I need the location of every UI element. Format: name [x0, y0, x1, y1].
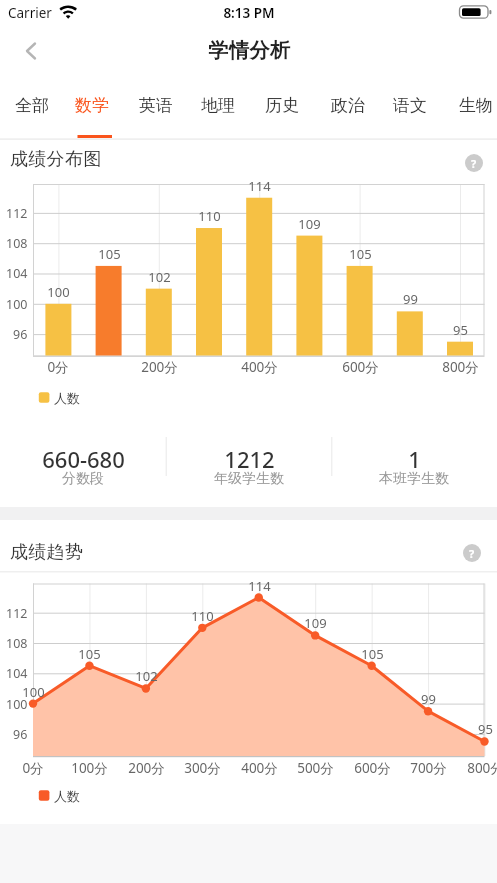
staticText: ? — [469, 546, 475, 561]
button[interactable]: 历史 — [256, 88, 308, 122]
staticText: 96 — [13, 726, 28, 743]
staticText: 年级学生数 — [214, 470, 284, 488]
staticText: 108 — [6, 635, 28, 652]
staticText: 108 — [6, 235, 28, 252]
button[interactable]: 英语 — [130, 88, 182, 122]
staticText: 109 — [298, 215, 321, 233]
staticText: 0分 — [22, 759, 44, 777]
staticText: 104 — [6, 665, 28, 682]
staticText: ? — [471, 156, 477, 171]
staticText: 1 — [408, 444, 421, 470]
staticText: 102 — [135, 667, 158, 685]
staticText: 语文 — [393, 95, 427, 116]
staticText: 300分 — [184, 759, 221, 777]
staticText: 110 — [198, 207, 221, 225]
staticText: 99 — [421, 690, 436, 708]
staticText: 800分 — [467, 759, 497, 777]
button[interactable]: ? — [463, 544, 481, 562]
staticText: 112 — [6, 605, 28, 622]
button[interactable]: 全部 — [6, 88, 58, 122]
staticText: 400分 — [241, 759, 278, 777]
staticText: 100分 — [71, 759, 108, 777]
staticText: 分数段 — [62, 470, 104, 488]
staticText: 成绩趋势 — [10, 541, 84, 564]
staticText: 96 — [13, 326, 28, 343]
staticText: 600分 — [342, 358, 379, 376]
button[interactable]: 数学 — [66, 88, 118, 122]
staticText: 成绩分布图 — [10, 148, 102, 171]
staticText: 500分 — [297, 759, 334, 777]
staticText: 114 — [248, 577, 271, 595]
button[interactable]: 生物 — [450, 88, 497, 122]
staticText: 100 — [6, 296, 28, 313]
staticText: 109 — [304, 614, 327, 632]
button[interactable]: 地理 — [192, 88, 244, 122]
staticText: 102 — [148, 268, 171, 286]
staticText: 700分 — [410, 759, 447, 777]
button[interactable] — [18, 38, 44, 64]
staticText: 400分 — [241, 358, 278, 376]
staticText: Carrier — [8, 4, 52, 22]
button[interactable] — [334, 440, 494, 490]
staticText: 105 — [98, 245, 121, 263]
staticText: 200分 — [141, 358, 178, 376]
button[interactable]: ? — [465, 154, 483, 172]
staticText: 104 — [6, 265, 28, 282]
staticText: 114 — [248, 177, 271, 195]
staticText: 本班学生数 — [379, 470, 449, 488]
staticText: 8:13 PM — [223, 4, 275, 22]
staticText: 数学 — [75, 95, 109, 116]
staticText: 地理 — [201, 95, 235, 116]
staticText: 95 — [453, 321, 468, 339]
staticText: 660-680 — [42, 444, 125, 470]
staticText: 学情分析 — [208, 38, 291, 63]
staticText: 人数 — [54, 788, 80, 804]
button[interactable]: 语文 — [384, 88, 436, 122]
staticText: 112 — [6, 205, 28, 222]
staticText: 600分 — [354, 759, 391, 777]
staticText: 人数 — [54, 390, 80, 406]
staticText: 英语 — [139, 95, 173, 116]
staticText: 105 — [78, 645, 101, 663]
staticText: 100 — [6, 696, 28, 713]
button[interactable] — [169, 440, 329, 490]
staticText: 全部 — [15, 95, 49, 116]
staticText: 0分 — [47, 358, 69, 376]
staticText: 110 — [191, 607, 214, 625]
staticText: 100 — [47, 283, 70, 301]
staticText: 105 — [361, 645, 384, 663]
staticText: 政治 — [331, 95, 365, 116]
staticText: 生物 — [459, 95, 493, 116]
staticText: 95 — [478, 720, 493, 738]
staticText: 800分 — [442, 358, 479, 376]
staticText: 历史 — [265, 95, 299, 116]
staticText: 99 — [403, 290, 418, 308]
button[interactable] — [3, 440, 163, 490]
staticText: 200分 — [128, 759, 165, 777]
staticText: 100 — [22, 683, 45, 701]
staticText: 105 — [349, 245, 372, 263]
button[interactable]: 政治 — [322, 88, 374, 122]
staticText: 1212 — [224, 444, 275, 470]
